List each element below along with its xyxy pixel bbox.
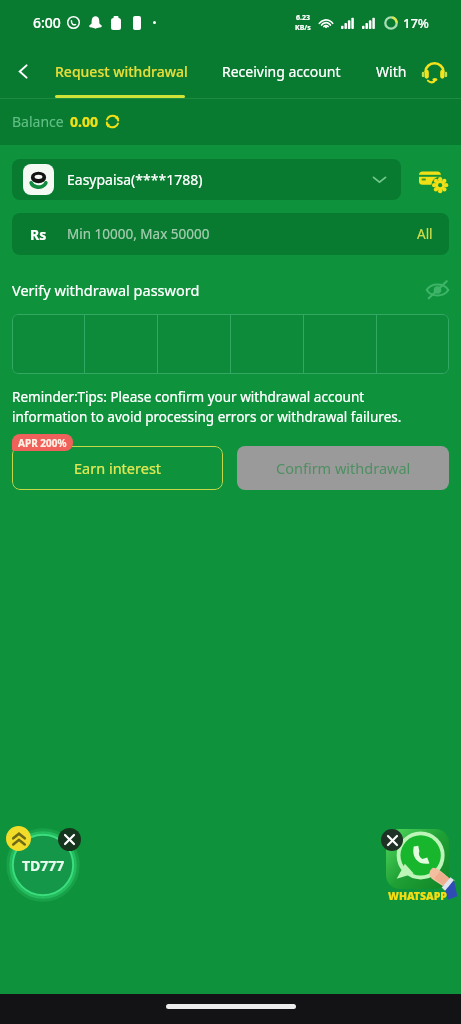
button[interactable]: With bbox=[367, 45, 416, 98]
button[interactable]: Request withdrawal bbox=[46, 45, 197, 98]
staticText: Earn interest bbox=[74, 458, 162, 478]
button[interactable]: Close bbox=[58, 828, 81, 851]
staticText: Rs bbox=[30, 225, 47, 244]
button[interactable]: Close WhatsApp shortcut bbox=[381, 829, 403, 851]
button[interactable]: Refresh balance bbox=[105, 114, 120, 129]
button[interactable] bbox=[158, 314, 230, 374]
button[interactable]: Manage cards bbox=[415, 162, 451, 198]
button[interactable]: Back bbox=[0, 45, 46, 98]
staticText: Confirm withdrawal bbox=[276, 458, 411, 478]
button[interactable]: Receiving account bbox=[213, 45, 350, 98]
staticText: Min 10000, Max 50000 bbox=[67, 225, 210, 243]
button[interactable] bbox=[231, 314, 303, 374]
staticText: 6.23 bbox=[296, 13, 310, 23]
button[interactable]: Confirm withdrawal bbox=[237, 446, 449, 490]
button[interactable] bbox=[85, 314, 157, 374]
button[interactable]: TD777 bbox=[11, 833, 75, 897]
staticText: With bbox=[376, 62, 407, 81]
button[interactable]: Expand menu bbox=[6, 826, 31, 851]
button[interactable]: Earn interest bbox=[12, 446, 223, 490]
button[interactable]: WhatsApp bbox=[386, 829, 449, 889]
staticText: 6:00 bbox=[33, 13, 61, 32]
button[interactable] bbox=[12, 314, 84, 374]
staticText: APR 200% bbox=[18, 436, 67, 450]
staticText: Request withdrawal bbox=[55, 62, 188, 81]
staticText: WHATSAPP bbox=[388, 889, 447, 903]
button[interactable]: Toggle password visibility bbox=[426, 278, 449, 301]
button[interactable] bbox=[304, 314, 376, 374]
button[interactable] bbox=[377, 314, 449, 374]
staticText: Easypaisa(****1788) bbox=[67, 170, 203, 189]
staticText: KB/s bbox=[295, 23, 311, 33]
button[interactable]: Customer support bbox=[418, 56, 450, 88]
staticText: 0.00 bbox=[70, 112, 98, 131]
staticText: Balance bbox=[12, 112, 64, 131]
staticText: Receiving account bbox=[222, 62, 341, 81]
staticText: Reminder:Tips: Please confirm your withd… bbox=[12, 388, 417, 426]
staticText: All bbox=[417, 225, 433, 243]
button[interactable]: Rs bbox=[12, 213, 449, 255]
staticText: Verify withdrawal password bbox=[12, 280, 200, 300]
button[interactable]: Easypaisa(****1788) bbox=[12, 159, 401, 200]
staticText: TD777 bbox=[22, 856, 65, 875]
staticText: 17% bbox=[403, 14, 429, 32]
